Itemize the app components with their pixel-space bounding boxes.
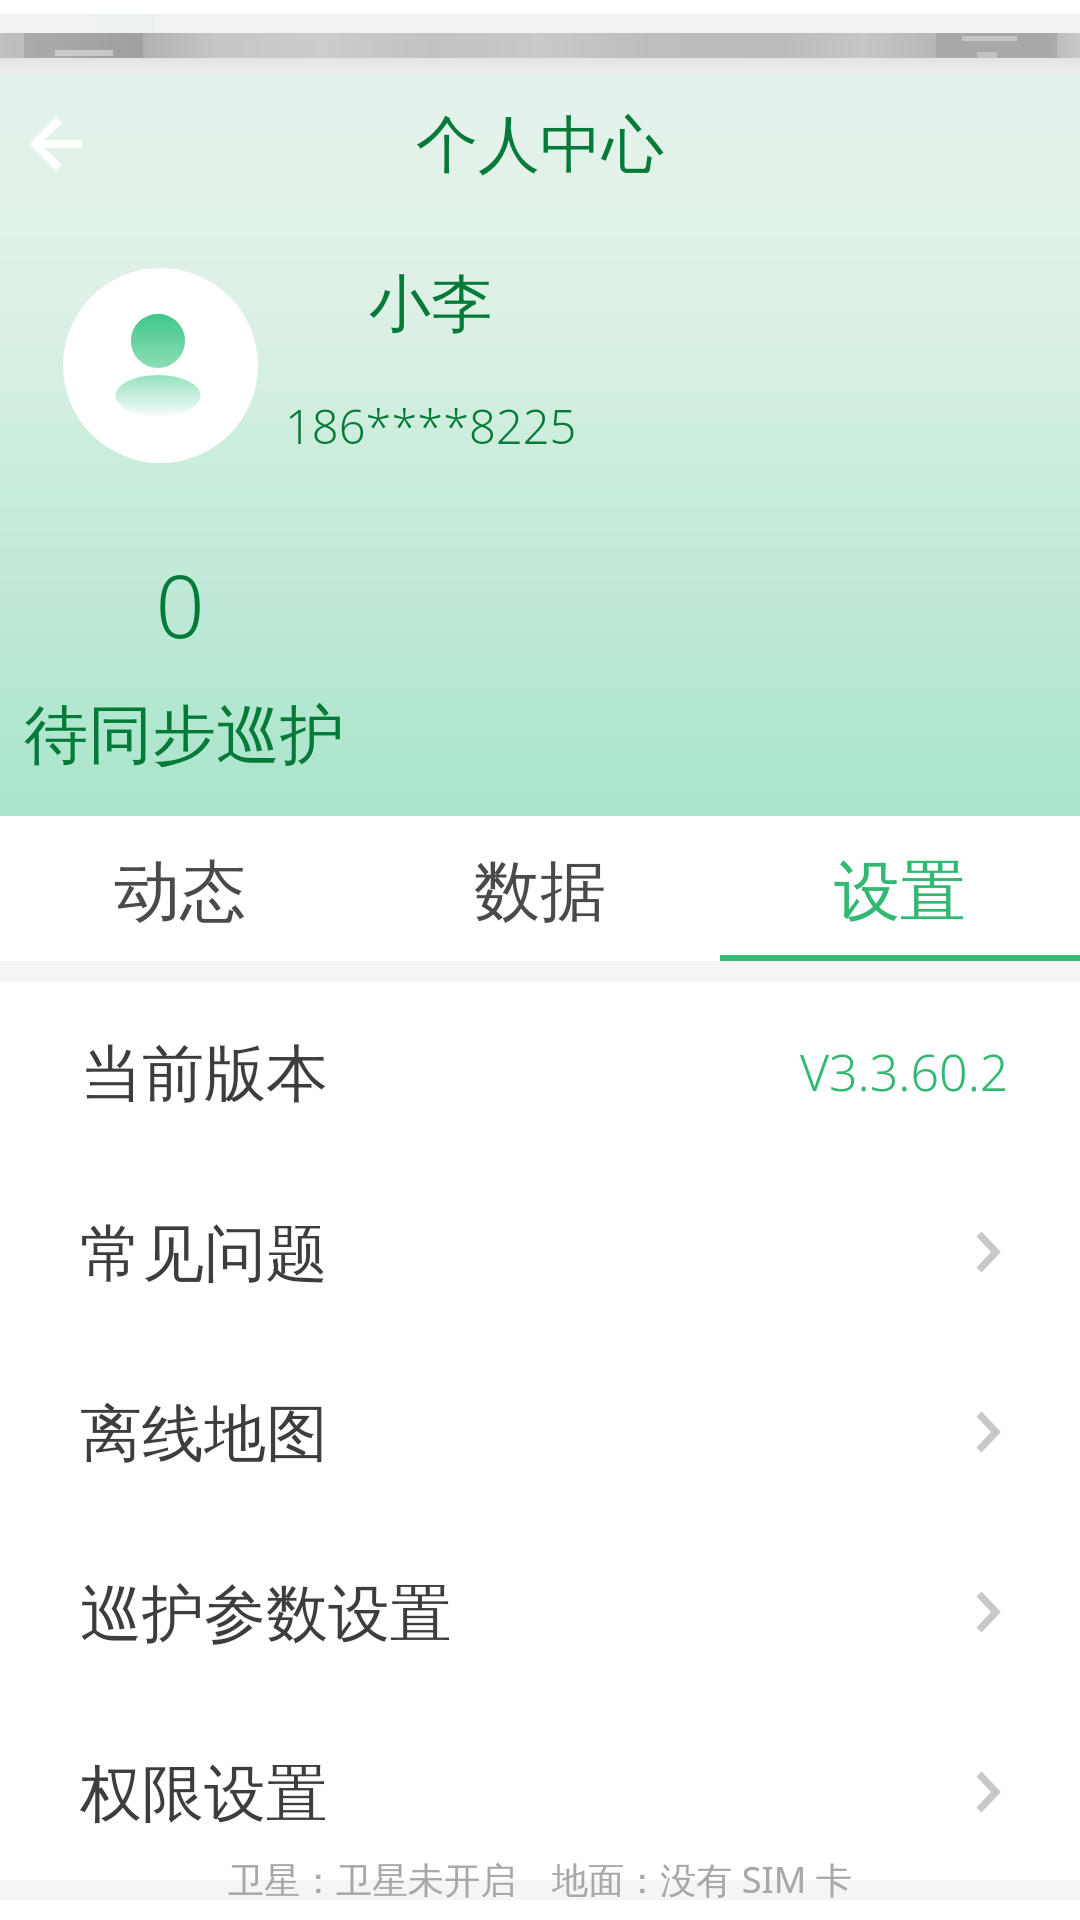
button[interactable]: 数据 xyxy=(360,816,720,899)
staticText: 186****8225 xyxy=(285,394,577,458)
staticText: 卫星：卫星未开启 地面：没有 SIM 卡 xyxy=(0,1855,1080,1904)
button[interactable]: 设置 xyxy=(720,816,1080,899)
staticText: 设置 xyxy=(834,850,966,933)
button[interactable]: 权限设置 xyxy=(0,1702,1080,1882)
button[interactable]: Back xyxy=(14,101,100,187)
button[interactable]: 常见问题 xyxy=(0,1162,1080,1342)
staticText: V3.3.60.2 xyxy=(800,1038,1009,1106)
staticText: 数据 xyxy=(474,850,606,933)
staticText: 当前版本 xyxy=(80,1035,328,1113)
button[interactable]: 离线地图 xyxy=(0,1342,1080,1522)
staticText: 待同步巡护 xyxy=(24,695,344,776)
button[interactable]: Avatar xyxy=(63,268,258,463)
staticText: 动态 xyxy=(114,850,246,933)
staticText: 权限设置 xyxy=(80,1755,328,1833)
staticText: 个人中心 xyxy=(0,106,1080,184)
staticText: 小李 xyxy=(369,265,493,343)
button[interactable]: 当前版本 xyxy=(0,982,1080,1162)
button[interactable]: 动态 xyxy=(0,816,360,899)
staticText: 巡护参数设置 xyxy=(80,1575,452,1653)
staticText: 离线地图 xyxy=(80,1395,328,1473)
button[interactable]: 巡护参数设置 xyxy=(0,1522,1080,1702)
staticText: 常见问题 xyxy=(80,1215,328,1293)
staticText: 0 xyxy=(0,546,360,663)
